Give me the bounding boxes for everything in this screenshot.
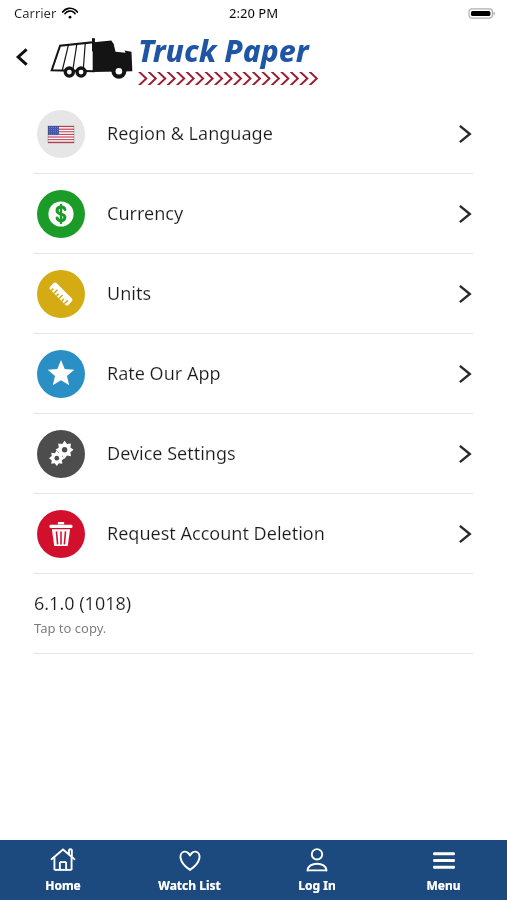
staticText: Truck Paper — [138, 30, 309, 71]
button[interactable]: Watch List — [126, 841, 253, 899]
button[interactable]: Region & Language — [0, 94, 507, 173]
staticText: 6.1.0 (1018) — [34, 591, 132, 616]
staticText: Rate Our App — [107, 361, 221, 386]
button[interactable]: Rate Our App — [0, 334, 507, 413]
staticText: Currency — [107, 201, 184, 226]
staticText: Request Account Deletion — [107, 521, 325, 546]
button[interactable]: Device Settings — [0, 414, 507, 493]
staticText: Menu — [426, 877, 461, 893]
staticText: Units — [107, 281, 152, 306]
button[interactable]: Back — [0, 34, 46, 80]
staticText: Watch List — [158, 877, 221, 893]
button[interactable]: Units — [0, 254, 507, 333]
staticText: Home — [45, 877, 81, 893]
staticText: Device Settings — [107, 441, 236, 466]
button[interactable]: Currency — [0, 174, 507, 253]
staticText: Tap to copy. — [34, 619, 107, 637]
staticText: Carrier — [14, 4, 57, 22]
staticText: Log In — [298, 877, 336, 893]
staticText: 2:20 PM — [229, 4, 279, 22]
button[interactable]: Menu — [380, 841, 507, 899]
staticText: Region & Language — [107, 121, 273, 146]
button[interactable]: 6.1.0 (1018) — [0, 574, 507, 653]
button[interactable]: Request Account Deletion — [0, 494, 507, 573]
button[interactable]: Home — [0, 841, 126, 899]
button[interactable]: Log In — [253, 841, 380, 899]
